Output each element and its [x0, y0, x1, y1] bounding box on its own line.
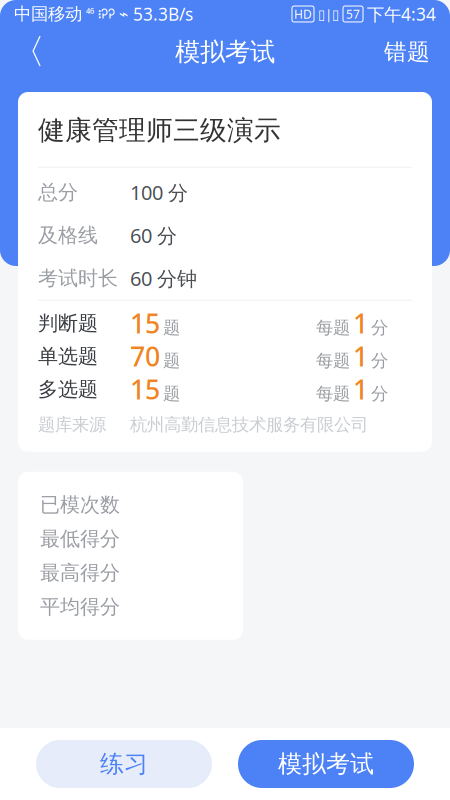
staticText: 题	[163, 383, 180, 404]
staticText: 题	[163, 350, 180, 371]
staticText: 模拟考试	[278, 749, 374, 779]
staticText: 每题	[316, 317, 350, 338]
staticText: ▯|▯	[318, 5, 339, 23]
staticText: 1	[353, 338, 368, 374]
staticText: 1	[353, 305, 368, 341]
staticText: 分	[371, 383, 388, 404]
staticText: 模拟考试	[175, 36, 275, 67]
staticText: 下午4:34	[367, 2, 436, 25]
staticText: 单选题	[38, 344, 98, 369]
staticText: 100 分	[130, 179, 188, 206]
staticText: 杭州高勤信息技术服务有限公司	[130, 414, 368, 435]
staticText: 57	[346, 6, 360, 22]
staticText: 70	[130, 338, 160, 374]
staticText: ⌁	[119, 5, 129, 23]
staticText: 题库来源	[38, 414, 106, 435]
button[interactable]: 练习	[36, 740, 212, 788]
staticText: 每题	[316, 383, 350, 404]
staticText: ⁴⁶	[86, 6, 94, 22]
staticText: 15	[130, 371, 160, 407]
staticText: 〈	[10, 31, 45, 73]
staticText: 判断题	[38, 311, 98, 336]
staticText: 15	[130, 305, 160, 341]
staticText: 中国移动	[14, 3, 82, 25]
staticText: 53.3B/s	[133, 2, 193, 25]
staticText: 总分	[38, 180, 78, 205]
staticText: HD	[294, 6, 312, 22]
staticText: 最低得分	[40, 526, 120, 551]
staticText: 1	[353, 371, 368, 407]
button[interactable]: 错题	[370, 30, 444, 74]
staticText: 已模次数	[40, 492, 120, 517]
staticText: 健康管理师三级演示	[38, 114, 281, 147]
staticText: 60 分钟	[130, 265, 197, 292]
staticText: 平均得分	[40, 594, 120, 619]
staticText: 及格线	[38, 223, 98, 248]
staticText: 题	[163, 317, 180, 338]
staticText: 多选题	[38, 377, 98, 402]
staticText: 分	[371, 350, 388, 371]
staticText: 最高得分	[40, 560, 120, 585]
staticText: 错题	[384, 38, 430, 66]
staticText: 分	[371, 317, 388, 338]
staticText: 练习	[100, 749, 148, 779]
staticText: 每题	[316, 350, 350, 371]
button[interactable]: 返回	[6, 30, 50, 74]
staticText: ᎒ᎮᎮ	[98, 5, 115, 23]
button[interactable]: 模拟考试	[238, 740, 414, 788]
staticText: 60 分	[130, 222, 177, 249]
staticText: 考试时长	[38, 266, 118, 291]
